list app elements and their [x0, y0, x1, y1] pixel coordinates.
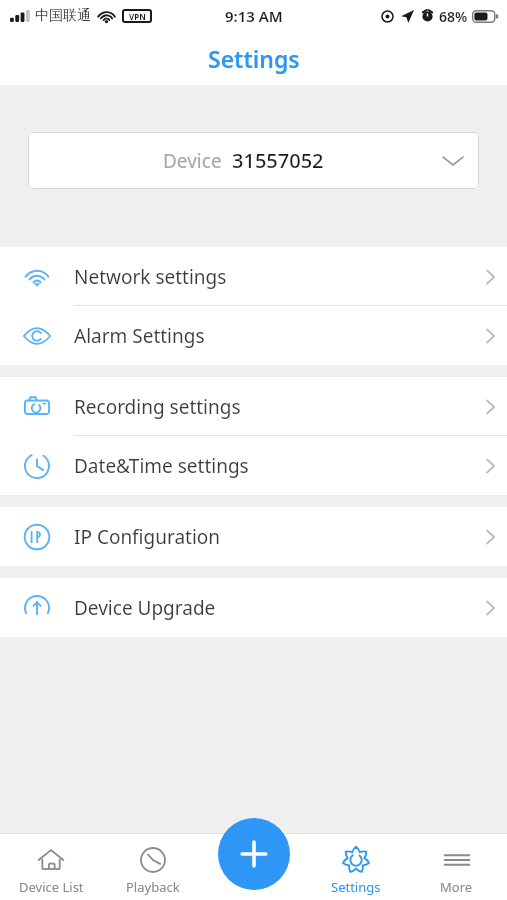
staticText: 9:13 AM: [225, 6, 283, 26]
button[interactable]: Add device: [218, 818, 290, 890]
staticText: Settings: [208, 43, 300, 74]
staticText: Device List: [19, 878, 84, 896]
staticText: Settings: [331, 878, 381, 896]
button[interactable]: Date and Time settings: [0, 436, 507, 495]
staticText: 68%: [439, 7, 468, 26]
staticText: Alarm Settings: [74, 323, 473, 349]
button[interactable]: Recording settings: [0, 377, 507, 436]
staticText: Playback: [126, 878, 180, 896]
staticText: VPN: [129, 11, 146, 22]
staticText: IP Configuration: [74, 524, 473, 550]
staticText: 31557052: [232, 147, 324, 174]
button[interactable]: Settings: [305, 838, 406, 896]
button[interactable]: Network settings: [0, 247, 507, 306]
staticText: More: [440, 878, 473, 896]
button[interactable]: Device: [28, 132, 479, 189]
staticText: 中国联通: [35, 7, 91, 25]
button[interactable]: IP Configuration: [0, 507, 507, 566]
button[interactable]: Playback: [102, 838, 204, 896]
staticText: Device: [163, 148, 222, 174]
button[interactable]: Alarm Settings: [0, 306, 507, 365]
button[interactable]: More: [406, 838, 507, 896]
staticText: Network settings: [74, 264, 473, 290]
button[interactable]: Device Upgrade: [0, 578, 507, 637]
staticText: Date&Time settings: [74, 453, 473, 479]
button[interactable]: Device List: [0, 838, 102, 896]
staticText: Recording settings: [74, 394, 473, 420]
staticText: Device Upgrade: [74, 595, 473, 621]
